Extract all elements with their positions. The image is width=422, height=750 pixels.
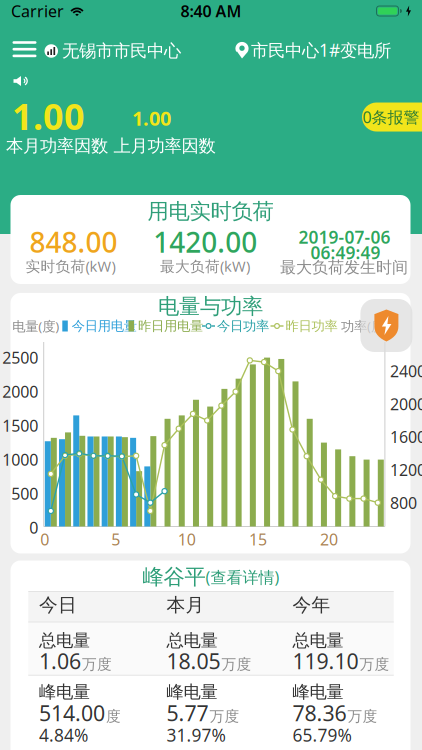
staticText: 1000 [2,449,38,470]
staticText: 万度 [82,655,112,673]
staticText: 18.05 [166,647,220,675]
staticText: 度 [106,707,121,725]
staticText: 31.97% [166,723,225,746]
staticText: 峰电量 [166,681,217,703]
staticText: 万度 [347,707,377,725]
staticText: 峰电量 [39,681,90,703]
staticText: 昨日功率 [285,318,337,334]
staticText: 1.06 [39,647,81,675]
staticText: 今日 [39,593,77,616]
staticText: 78.36 [292,699,346,727]
staticText: 2400 [390,360,422,382]
staticText: 0 [40,529,49,550]
staticText: 峰电量 [292,681,343,703]
staticText: 2000 [2,381,38,402]
staticText: 本月功率因数 [6,135,108,157]
staticText: 8:40 AM [180,0,241,22]
staticText: 1200 [390,459,422,480]
staticText: 1500 [2,415,38,436]
staticText: 65.79% [292,723,351,746]
staticText: 功率(度) [341,317,388,335]
staticText: 市民中心1#变电所 [251,38,391,61]
staticText: 电量与功率 [158,293,263,320]
staticText: 5 [111,529,120,550]
staticText: 本月 [166,593,204,616]
staticText: 昨日用电量 [138,318,203,334]
staticText: 上月功率因数 [113,135,215,157]
staticText: 514.00 [39,699,105,727]
staticText: 06:49:49 [310,241,380,264]
staticText: 峰谷平 [142,564,205,590]
staticText: 总电量 [39,630,90,651]
staticText: 500 [11,483,38,504]
staticText: 无锡市市民中心 [62,40,181,62]
staticText: 4.84% [39,723,88,746]
button[interactable]: 语音播报 [13,76,29,86]
staticText: 最大负荷(kW) [160,256,250,276]
button[interactable]: Menu [8,34,40,64]
button[interactable]: 0条报警 [362,102,422,131]
staticText: 万度 [221,655,251,673]
staticText: 1600 [390,426,422,447]
staticText: 1.00 [132,105,171,131]
staticText: 今年 [292,593,330,616]
button[interactable]: 无锡市市民中心 [44,40,224,62]
staticText: 实时负荷(kW) [25,256,115,276]
staticText: 848.00 [29,223,117,261]
button[interactable]: 峰谷平 [142,564,279,590]
staticText: 最大负荷发生时间 [280,258,408,277]
staticText: 20 [320,529,338,550]
staticText: 用电实时负荷 [147,198,273,225]
staticText: 今日功率 [217,318,269,334]
staticText: 1420.00 [153,223,257,261]
button[interactable]: 市民中心1#变电所 [235,38,422,61]
staticText: 0 [29,517,38,538]
staticText: 总电量 [166,630,217,651]
staticText: 万度 [209,707,239,725]
staticText: 2500 [2,347,38,368]
staticText: 电量(度) [12,317,59,335]
button[interactable]: 用电安全 [360,299,412,352]
staticText: 10 [178,529,196,550]
staticText: 总电量 [292,630,343,651]
staticText: 1.00 [12,92,85,140]
staticText: 5.77 [166,699,208,727]
staticText: 2000 [390,393,422,415]
staticText: 119.10 [292,647,358,675]
staticText: 15 [249,529,267,550]
staticText: Carrier [11,0,64,22]
staticText: 2019-07-06 [298,225,390,248]
staticText: (查看详情) [205,566,279,588]
staticText: 今日用电量 [72,318,137,334]
staticText: 万度 [359,655,389,673]
staticText: 0条报警 [362,106,419,128]
staticText: 800 [390,492,417,513]
